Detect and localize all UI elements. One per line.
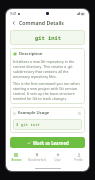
staticText: 9:41	[10, 11, 17, 16]
button[interactable]: Profile	[68, 151, 89, 166]
staticText: Example Usage	[18, 110, 50, 116]
button[interactable]: Mark as Learned	[10, 137, 85, 148]
staticText: $ git init	[16, 122, 40, 127]
button[interactable]: Browse	[6, 151, 26, 166]
staticText: Browse	[11, 158, 22, 162]
staticText: Command Details	[19, 19, 64, 26]
button[interactable]: git init	[10, 30, 85, 45]
staticText: Quiz	[54, 158, 61, 162]
staticText: Description	[19, 51, 43, 57]
button[interactable]: Copy	[77, 111, 82, 116]
button[interactable]: Back	[10, 19, 18, 27]
staticText: Bookmarked	[28, 158, 46, 162]
staticText: This is the first command you run when s…	[13, 81, 82, 101]
button[interactable]: Bookmarked	[26, 151, 47, 166]
staticText: git init	[35, 34, 61, 41]
button[interactable]: Quiz	[47, 151, 68, 166]
staticText: Initializes a new Git repository in the …	[13, 59, 82, 79]
staticText: Profile	[74, 158, 83, 162]
staticText: Mark as Learned	[33, 140, 69, 146]
